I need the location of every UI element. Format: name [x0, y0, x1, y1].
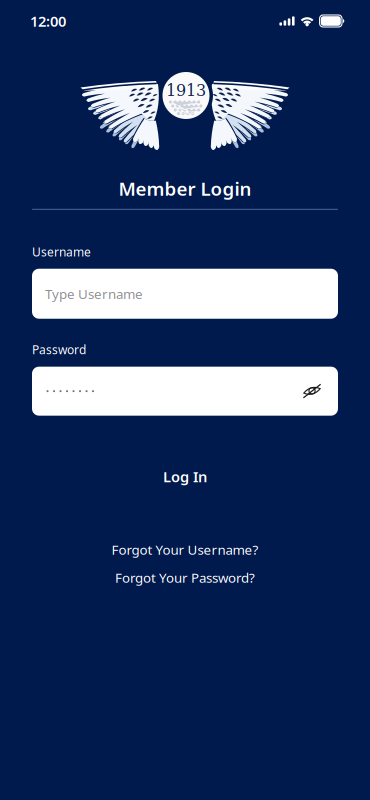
- staticText: Username: [32, 244, 91, 260]
- button[interactable]: Show password: [289, 367, 338, 416]
- button[interactable]: Forgot Your Username?: [0, 539, 370, 561]
- staticText: Log In: [163, 467, 207, 486]
- staticText: Forgot Your Password?: [115, 569, 255, 586]
- staticText: Type Username: [45, 285, 143, 303]
- staticText: Forgot Your Username?: [111, 541, 258, 558]
- staticText: 1913: [166, 81, 206, 100]
- staticText: Member Login: [118, 176, 251, 201]
- staticText: 12:00: [30, 11, 66, 31]
- staticText: Password: [32, 342, 86, 358]
- button[interactable]: Log In: [0, 455, 370, 499]
- button[interactable]: Forgot Your Password?: [0, 567, 370, 589]
